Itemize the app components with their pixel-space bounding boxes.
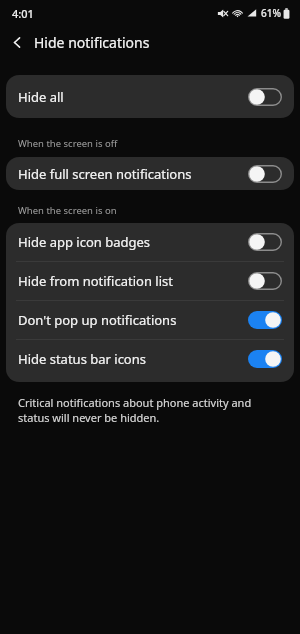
staticText: 4:01 (12, 6, 34, 21)
staticText: When the screen is on (18, 204, 117, 217)
button[interactable] (248, 233, 282, 251)
staticText: Don't pop up notifications (18, 311, 248, 329)
staticText: Hide from notification list (18, 272, 248, 290)
staticText: Hide app icon badges (18, 233, 248, 251)
button[interactable] (248, 311, 282, 329)
button[interactable]: Hide all (6, 75, 294, 118)
staticText: Hide all (18, 88, 248, 106)
button[interactable] (248, 88, 282, 106)
staticText: Hide full screen notifications (18, 165, 248, 183)
button[interactable]: Don't pop up notifications (6, 301, 294, 339)
staticText: 61% (261, 6, 281, 20)
staticText: Critical notifications about phone activ… (18, 395, 280, 425)
button[interactable]: Hide from notification list (6, 262, 294, 300)
staticText: When the screen is off (18, 137, 118, 150)
button[interactable] (248, 350, 282, 368)
button[interactable]: Hide full screen notifications (6, 157, 294, 190)
staticText: Hide notifications (34, 33, 150, 52)
staticText: Hide status bar icons (18, 350, 248, 368)
button[interactable] (248, 165, 282, 183)
button[interactable]: Hide app icon badges (6, 223, 294, 261)
button[interactable]: Hide status bar icons (6, 340, 294, 378)
button[interactable]: Back (0, 26, 34, 58)
button[interactable] (248, 272, 282, 290)
